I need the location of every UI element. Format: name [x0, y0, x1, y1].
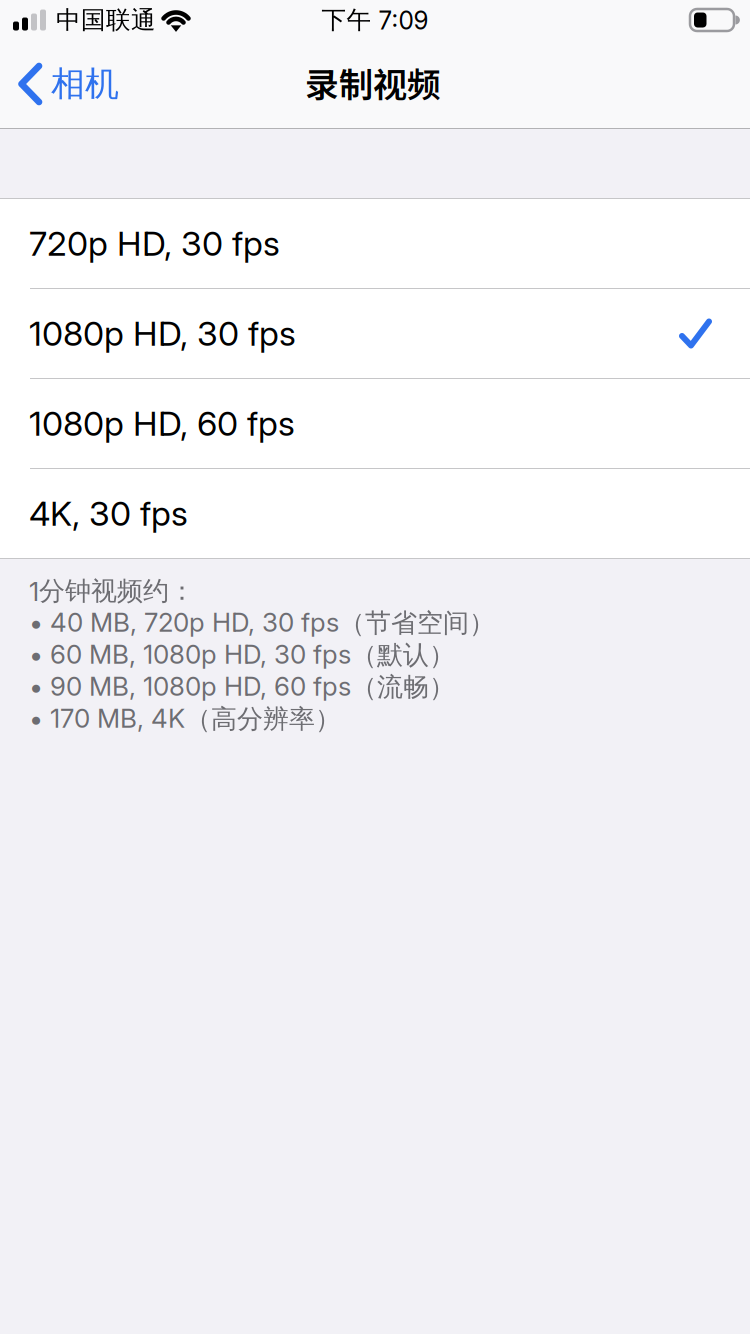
button[interactable]: 1080p HD, 60 fps — [0, 379, 750, 469]
staticText: 1分钟视频约： — [29, 575, 195, 607]
button[interactable]: 返回相机 — [0, 40, 133, 128]
staticText: 720p HD, 30 fps — [29, 223, 280, 264]
staticText: • 40 MB, 720p HD, 30 fps（节省空间） — [29, 606, 495, 639]
staticText: 中国联通 — [56, 5, 156, 35]
staticText: 录制视频 — [305, 58, 441, 107]
staticText: • 90 MB, 1080p HD, 60 fps（流畅） — [29, 670, 455, 703]
staticText: 相机 — [51, 63, 119, 105]
staticText: 1080p HD, 60 fps — [29, 403, 295, 444]
button[interactable]: 720p HD, 30 fps — [0, 199, 750, 289]
staticText: 1080p HD, 30 fps — [29, 313, 296, 354]
button[interactable]: 4K, 30 fps — [0, 469, 750, 558]
staticText: 4K, 30 fps — [29, 493, 188, 534]
staticText: • 60 MB, 1080p HD, 30 fps（默认） — [29, 638, 455, 671]
staticText: 下午 7:09 — [321, 5, 428, 35]
staticText: • 170 MB, 4K（高分辨率） — [29, 702, 341, 735]
button[interactable]: 1080p HD, 30 fps — [0, 289, 750, 379]
